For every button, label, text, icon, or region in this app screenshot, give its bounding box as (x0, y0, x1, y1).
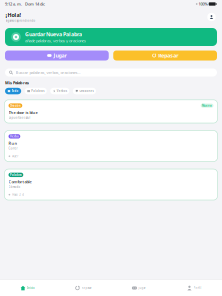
button[interactable]: Jugar (111, 280, 166, 296)
staticText: Comfortable (8, 179, 31, 184)
staticText: Repasar (158, 52, 178, 59)
staticText: Inicio (27, 286, 35, 290)
button[interactable]: Verbos (50, 88, 69, 94)
staticText: Jugar (54, 52, 67, 59)
staticText: Mis Palabras (5, 80, 29, 85)
button[interactable]: Jugar (5, 50, 109, 60)
staticText: Todo (12, 89, 19, 93)
staticText: Buscar palabras, verbos, oraciones... (15, 70, 80, 75)
staticText: Palabras (31, 89, 44, 93)
staticText: Guardar Nueva Palabra (25, 31, 82, 38)
staticText: Run (8, 141, 17, 146)
button[interactable]: Repasar (113, 50, 217, 60)
button[interactable]: Buscar palabras, verbos, oraciones... (5, 68, 217, 76)
staticText: Correr (8, 147, 17, 150)
staticText: Repasar (81, 286, 91, 290)
staticText: Dom 14 dic (22, 1, 45, 7)
button[interactable]: Perfil (206, 12, 216, 22)
staticText: Hace 2 d (12, 193, 24, 196)
staticText: The door is blue (8, 110, 37, 115)
staticText: Verbos (57, 89, 67, 93)
button[interactable]: Inicio (0, 280, 55, 296)
staticText: añade palabras, verbos y oraciones (25, 38, 86, 43)
staticText: Ayer (12, 154, 18, 158)
button[interactable]: Oraciones (73, 88, 96, 94)
button[interactable]: Guardar Nueva Palabra (5, 28, 217, 46)
button[interactable]: Verbo (4, 131, 217, 162)
staticText: Palabra (10, 173, 22, 177)
staticText: Cómodo (8, 185, 20, 189)
staticText: 9:12 a. m. (5, 1, 22, 7)
staticText: Jugar (138, 286, 145, 290)
staticText: Nuevo (202, 104, 212, 107)
button[interactable]: Oración (4, 100, 217, 123)
button[interactable]: Palabra (4, 169, 217, 200)
staticText: La puerta es azul (8, 116, 30, 119)
staticText: Sigamos aprendiendo (5, 19, 35, 22)
button[interactable]: Perfil (166, 280, 222, 296)
staticText: Oración (10, 104, 21, 107)
staticText: 100% (197, 1, 207, 7)
staticText: Oraciones (79, 89, 93, 93)
staticText: ¡Hola! (5, 11, 21, 18)
staticText: Verbo (10, 135, 19, 138)
button[interactable]: Todo (5, 88, 21, 94)
button[interactable]: Palabras (25, 88, 47, 94)
button[interactable]: Repasar (55, 280, 111, 296)
staticText: Perfil (193, 286, 201, 290)
